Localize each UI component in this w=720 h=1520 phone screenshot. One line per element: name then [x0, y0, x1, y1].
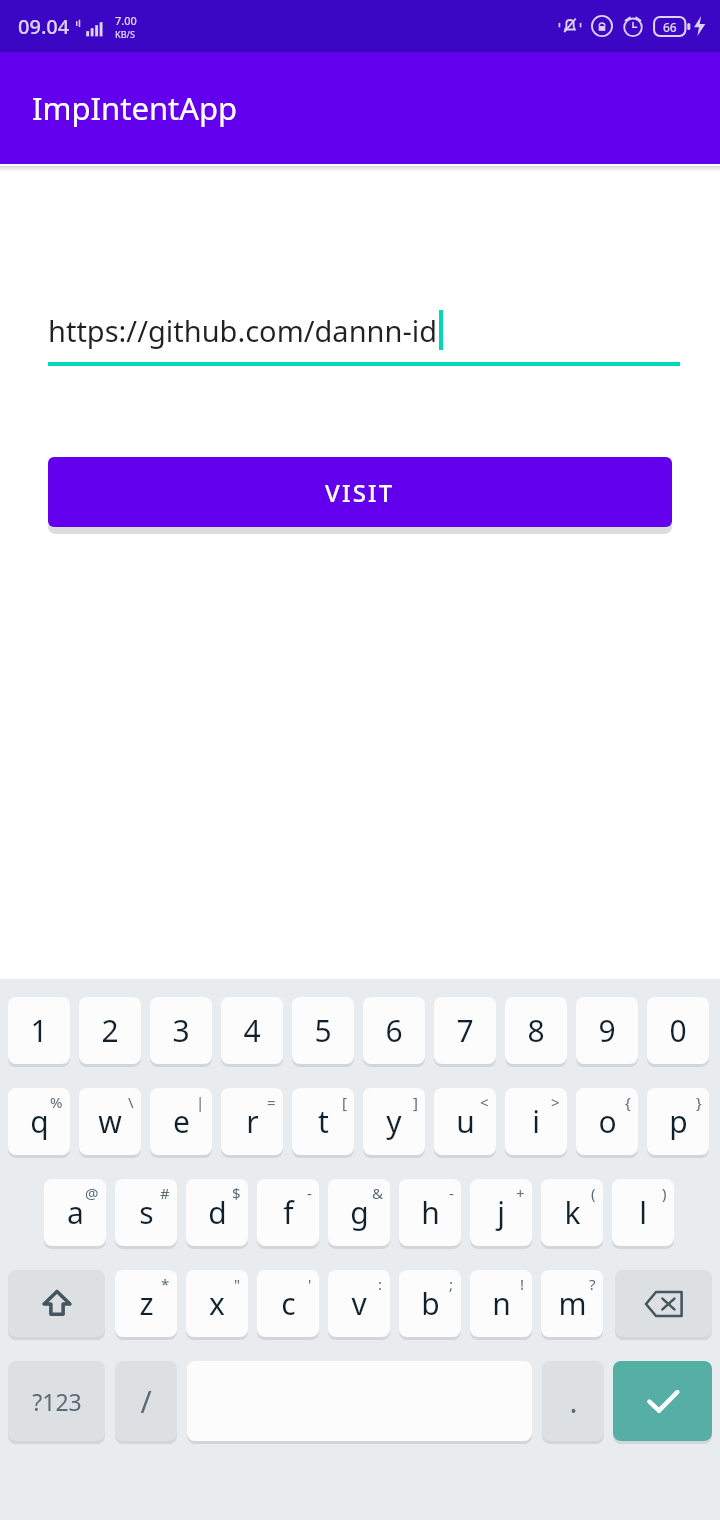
button[interactable]: h	[399, 1179, 461, 1246]
staticText: k	[564, 1192, 581, 1233]
button[interactable]: Enter	[613, 1361, 712, 1441]
staticText: y	[386, 1101, 402, 1142]
staticText: @	[85, 1183, 99, 1203]
staticText: KB/S	[115, 28, 135, 40]
button[interactable]: a	[44, 1179, 106, 1246]
button[interactable]: p	[647, 1088, 709, 1155]
staticText: ?	[589, 1274, 596, 1294]
button[interactable]: m	[541, 1270, 603, 1337]
button[interactable]: 2	[79, 997, 141, 1064]
staticText: q	[30, 1101, 49, 1142]
button[interactable]: d	[186, 1179, 248, 1246]
staticText: #	[160, 1183, 170, 1203]
staticText: VISIT	[325, 476, 395, 509]
staticText: 5	[314, 1010, 332, 1051]
button[interactable]: n	[470, 1270, 532, 1337]
button[interactable]: q	[8, 1088, 70, 1155]
button[interactable]: r	[221, 1088, 283, 1155]
button[interactable]: y	[363, 1088, 425, 1155]
staticText: f	[283, 1192, 294, 1233]
staticText: n	[492, 1283, 511, 1324]
button[interactable]: g	[328, 1179, 390, 1246]
staticText: 0	[669, 1010, 687, 1051]
staticText: 8	[527, 1010, 545, 1051]
button[interactable]: e	[150, 1088, 212, 1155]
staticText: g	[350, 1192, 369, 1233]
button[interactable]: o	[576, 1088, 638, 1155]
staticText: 7.00	[115, 13, 137, 28]
staticText: "	[234, 1274, 241, 1294]
button[interactable]: j	[470, 1179, 532, 1246]
staticText: >	[551, 1092, 560, 1112]
button[interactable]: /	[115, 1361, 177, 1441]
staticText: &	[372, 1183, 383, 1203]
button[interactable]: s	[115, 1179, 177, 1246]
button[interactable]: VISIT	[48, 457, 672, 527]
button[interactable]: 8	[505, 997, 567, 1064]
staticText: <	[480, 1092, 489, 1112]
staticText: ;	[449, 1274, 454, 1294]
button[interactable]: 7	[434, 997, 496, 1064]
staticText: 09.04	[18, 13, 70, 40]
staticText: $	[232, 1183, 241, 1203]
button[interactable]: i	[505, 1088, 567, 1155]
staticText: [	[342, 1092, 347, 1112]
staticText: 2	[101, 1010, 119, 1051]
staticText: j	[497, 1192, 505, 1233]
button[interactable]: 0	[647, 997, 709, 1064]
button[interactable]: t	[292, 1088, 354, 1155]
staticText: -	[307, 1183, 312, 1203]
staticText: :	[378, 1274, 383, 1294]
staticText: !	[520, 1274, 525, 1294]
staticText: d	[208, 1192, 227, 1233]
staticText: (	[591, 1183, 596, 1203]
button[interactable]: v	[328, 1270, 390, 1337]
button[interactable]: l	[612, 1179, 674, 1246]
button[interactable]: .	[542, 1361, 604, 1441]
staticText: 66	[663, 19, 677, 35]
button[interactable]: 3	[150, 997, 212, 1064]
staticText: p	[669, 1101, 688, 1142]
staticText: ImpIntentApp	[32, 87, 238, 129]
staticText: c	[281, 1283, 296, 1324]
staticText: {	[625, 1092, 631, 1112]
staticText: 6	[385, 1010, 403, 1051]
staticText: w	[98, 1101, 122, 1142]
button[interactable]: x	[186, 1270, 248, 1337]
button[interactable]: Shift	[8, 1270, 105, 1337]
button[interactable]: f	[257, 1179, 319, 1246]
staticText: /	[140, 1381, 152, 1422]
button[interactable]: 5	[292, 997, 354, 1064]
button[interactable]: w	[79, 1088, 141, 1155]
staticText: a	[67, 1192, 84, 1233]
button[interactable]: z	[115, 1270, 177, 1337]
button[interactable]: c	[257, 1270, 319, 1337]
staticText: }	[696, 1092, 702, 1112]
button[interactable]: ?123	[8, 1361, 105, 1441]
staticText: ?123	[32, 1386, 82, 1417]
staticText: h	[421, 1192, 440, 1233]
staticText: m	[558, 1283, 587, 1324]
button[interactable]: k	[541, 1179, 603, 1246]
button[interactable]: https://github.com/dannn-id	[48, 310, 680, 350]
button[interactable]: 4	[221, 997, 283, 1064]
staticText: e	[173, 1101, 190, 1142]
button[interactable]: 6	[363, 997, 425, 1064]
staticText: o	[598, 1101, 617, 1142]
button[interactable]: b	[399, 1270, 461, 1337]
button[interactable]: 9	[576, 997, 638, 1064]
button[interactable]: u	[434, 1088, 496, 1155]
staticText: https://github.com/dannn-id	[48, 311, 438, 350]
staticText: v	[351, 1283, 367, 1324]
staticText: +	[516, 1183, 525, 1203]
staticText: t	[318, 1101, 329, 1142]
staticText: 4	[243, 1010, 261, 1051]
staticText: |	[196, 1092, 205, 1112]
staticText: )	[662, 1183, 667, 1203]
staticText: '	[308, 1274, 312, 1294]
staticText: .	[569, 1381, 578, 1422]
button[interactable]: Backspace	[615, 1270, 712, 1337]
staticText: s	[139, 1192, 154, 1233]
button[interactable]: 1	[8, 997, 70, 1064]
